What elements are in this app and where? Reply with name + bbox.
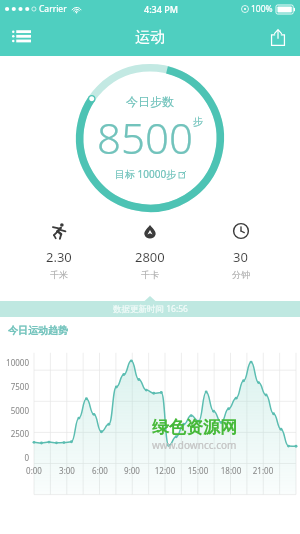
staticText: 15:00	[187, 465, 209, 476]
staticText: 今日步数	[126, 94, 174, 109]
staticText: 4:34 PM	[144, 3, 178, 15]
staticText: 21:00	[252, 465, 274, 476]
staticText: 2.30	[46, 248, 72, 266]
staticText: 100%	[251, 3, 273, 15]
staticText: 5000	[0, 405, 29, 416]
other: Calories	[141, 222, 159, 240]
button[interactable]: Distance	[14, 220, 104, 282]
staticText: 3:00	[56, 465, 78, 476]
staticText: 12:00	[154, 465, 176, 476]
staticText: 8500	[97, 109, 193, 166]
button[interactable]: Duration	[195, 220, 286, 282]
staticText: 千米	[50, 269, 68, 280]
staticText: 分钟	[232, 269, 250, 280]
staticText: 30	[233, 248, 248, 266]
staticText: 绿色资源网	[152, 417, 237, 438]
staticText: 0	[0, 452, 29, 463]
staticText: 2800	[135, 248, 165, 266]
staticText: 目标 10000步	[115, 167, 177, 181]
staticText: 9:00	[121, 465, 143, 476]
staticText: 10000	[0, 357, 29, 368]
staticText: 千卡	[141, 269, 159, 280]
staticText: 运动	[135, 28, 165, 47]
staticText: 数据更新时间 16:56	[113, 303, 188, 315]
button[interactable]: 目标 10000步	[115, 166, 186, 181]
button[interactable]: Calories	[104, 220, 195, 282]
staticText: 18:00	[220, 465, 242, 476]
staticText: 2500	[0, 428, 29, 439]
button[interactable]: Menu	[2, 18, 40, 56]
staticText: 今日运动趋势	[8, 324, 68, 337]
other: Distance	[50, 222, 68, 240]
staticText: www.downcc.com	[152, 438, 237, 452]
staticText: 0:00	[23, 465, 45, 476]
staticText: Carrier	[39, 3, 67, 15]
other: Duration	[232, 222, 250, 240]
staticText: 步	[193, 115, 203, 128]
button[interactable]: Share	[260, 19, 296, 55]
staticText: 6:00	[89, 465, 111, 476]
staticText: 7500	[0, 381, 29, 392]
